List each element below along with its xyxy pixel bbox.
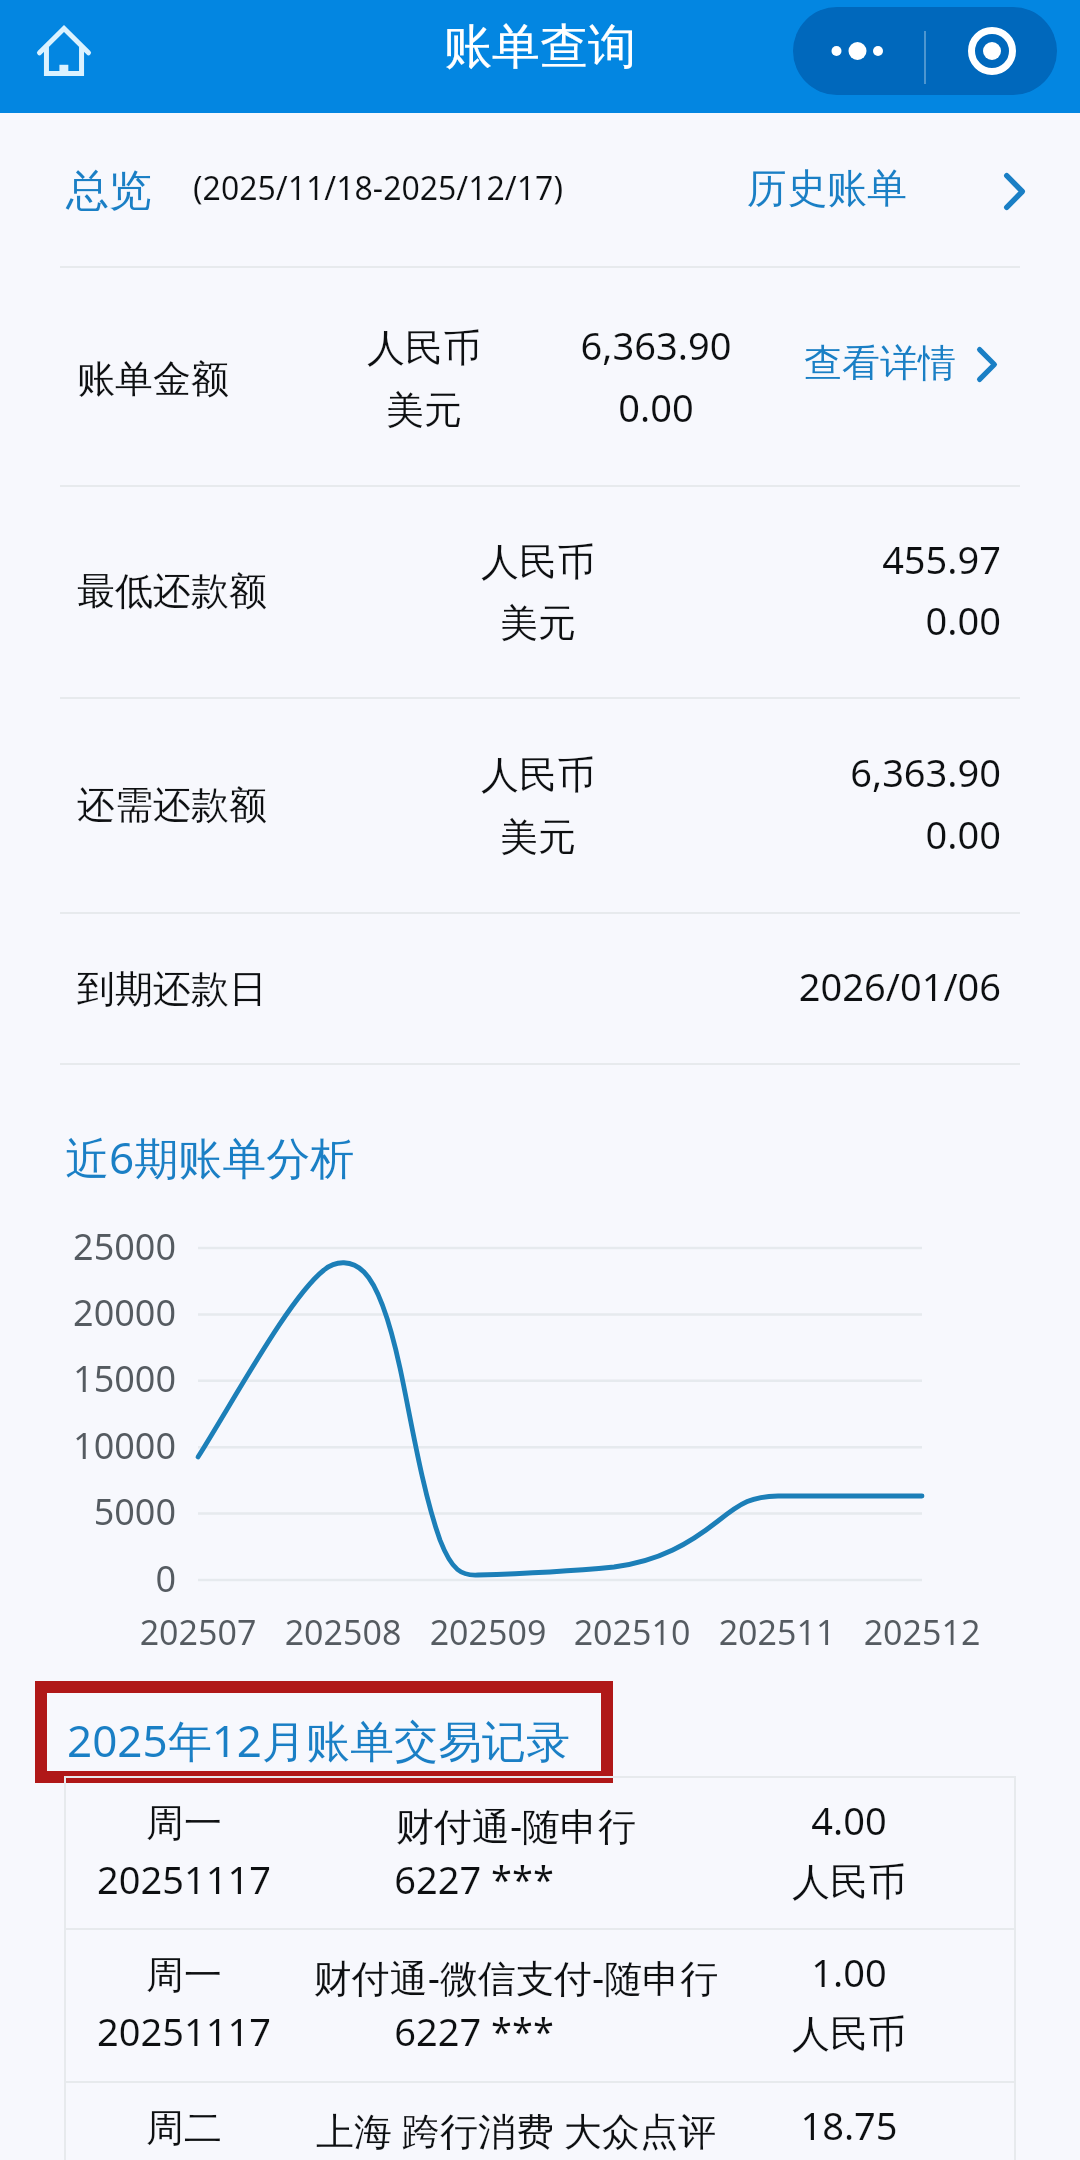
staticText: 人民币	[258, 538, 818, 586]
staticText: 总览	[66, 164, 152, 218]
staticText: 2026/01/06	[601, 960, 1001, 1012]
staticText: 人民币	[144, 324, 704, 372]
staticText: 历史账单	[747, 163, 907, 213]
staticText: 查看详情	[804, 339, 956, 387]
button[interactable]: 到期还款日	[0, 912, 1080, 1063]
staticText: 15000	[0, 1354, 176, 1403]
staticText: 美元	[258, 599, 818, 647]
button[interactable]: 周一	[66, 1776, 1014, 1928]
button[interactable]: 周一	[66, 1928, 1014, 2080]
staticText: 财付通-微信支付-随申行	[206, 1951, 826, 2003]
staticText: 上海 跨行消费 大众点评	[206, 2104, 826, 2156]
staticText: 202508	[223, 1609, 463, 1655]
staticText: 周一	[34, 1951, 334, 1999]
staticText: 到期还款日	[77, 965, 267, 1013]
staticText: 6227 ***	[274, 1853, 674, 1905]
staticText: 6227 ***	[274, 2005, 674, 2057]
button[interactable]: Close mini program	[926, 7, 1057, 95]
button[interactable]: 2025年12月账单交易记录	[35, 1681, 613, 1783]
button[interactable]: 周二	[66, 2081, 1014, 2160]
staticText: 1.00	[699, 1946, 999, 1998]
staticText: 还需还款额	[77, 781, 267, 829]
staticText: 202512	[802, 1609, 1042, 1655]
staticText: 0	[0, 1554, 176, 1603]
staticText: 10000	[0, 1421, 176, 1470]
staticText: 美元	[258, 813, 818, 861]
button[interactable]: 账单金额	[0, 266, 1080, 485]
staticText: 美元	[144, 386, 704, 434]
staticText: 25000	[0, 1222, 176, 1271]
staticText: 20251117	[34, 1853, 334, 1905]
staticText: (2025/11/18-2025/12/17)	[193, 166, 563, 210]
staticText: 202511	[657, 1609, 897, 1655]
staticText: 6,363.90	[601, 746, 1001, 798]
button[interactable]: 查看详情	[790, 322, 1017, 402]
staticText: 账单金额	[77, 355, 229, 403]
staticText: 202510	[512, 1609, 752, 1655]
staticText: 5000	[0, 1487, 176, 1536]
button[interactable]: More options	[793, 7, 925, 95]
staticText: 18.75	[699, 2099, 999, 2151]
staticText: 20251117	[34, 2005, 334, 2057]
staticText: 4.00	[699, 1794, 999, 1846]
button[interactable]: 最低还款额	[0, 485, 1080, 697]
staticText: 人民币	[258, 751, 818, 799]
staticText: 0.00	[601, 808, 1001, 860]
button[interactable]: 总览	[50, 140, 180, 240]
staticText: 0.00	[601, 594, 1001, 646]
staticText: 周二	[34, 2104, 334, 2152]
staticText: 人民币	[699, 2010, 999, 2058]
button[interactable]: Home	[19, 14, 109, 88]
button[interactable]: 历史账单	[720, 140, 1040, 240]
staticText: 20000	[0, 1288, 176, 1337]
staticText: 0.00	[376, 381, 936, 433]
staticText: 人民币	[699, 1858, 999, 1906]
staticText: 账单查询	[444, 17, 636, 77]
staticText: 455.97	[601, 533, 1001, 585]
staticText: 最低还款额	[77, 567, 267, 615]
staticText: 202507	[78, 1609, 318, 1655]
staticText: 202509	[368, 1609, 608, 1655]
staticText: 周一	[34, 1799, 334, 1847]
button[interactable]: 还需还款额	[0, 697, 1080, 912]
staticText: 2025年12月账单交易记录	[67, 1710, 571, 1770]
staticText: 财付通-随申行	[206, 1799, 826, 1851]
staticText: 近6期账单分析	[65, 1127, 355, 1187]
staticText: 6,363.90	[376, 319, 936, 371]
